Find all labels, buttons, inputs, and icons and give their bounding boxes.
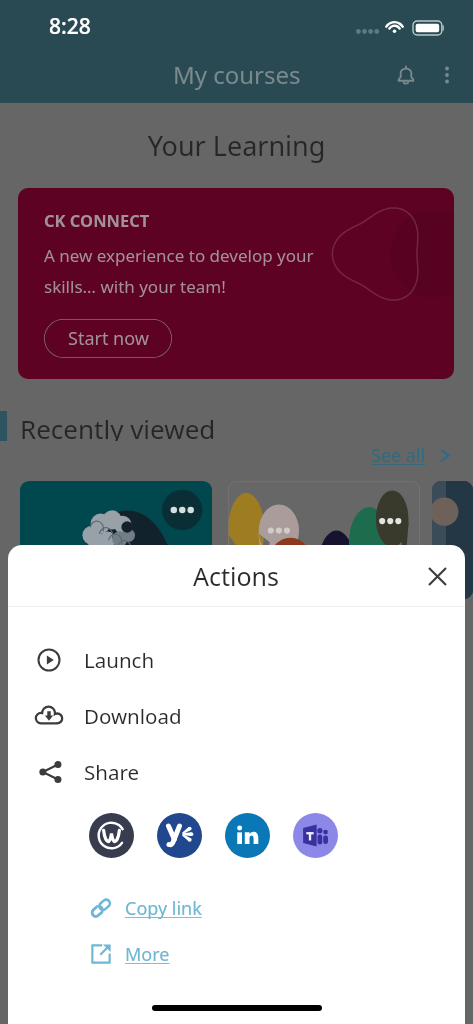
- button[interactable]: [432, 481, 473, 599]
- button[interactable]: [20, 481, 212, 599]
- button[interactable]: Share on LinkedIn: [225, 813, 270, 858]
- button[interactable]: Share on Yammer: [157, 813, 202, 858]
- staticText: Recently viewed: [20, 411, 216, 441]
- staticText: See all: [371, 443, 426, 468]
- button[interactable]: Download: [8, 688, 465, 744]
- button[interactable]: Recently viewed: [0, 411, 216, 441]
- staticText: A new experience to develop your skills……: [44, 244, 314, 298]
- button[interactable]: More options: [429, 57, 465, 93]
- button[interactable]: Copy link: [8, 885, 465, 931]
- button[interactable]: Share: [8, 744, 465, 800]
- button[interactable]: See all: [371, 443, 452, 468]
- staticText: Actions: [193, 559, 280, 593]
- button[interactable]: Start now: [44, 319, 172, 358]
- staticText: 8:28: [49, 12, 91, 41]
- button[interactable]: Launch: [8, 632, 465, 688]
- staticText: My courses: [173, 58, 301, 91]
- staticText: More: [125, 942, 170, 967]
- button[interactable]: More: [8, 931, 465, 977]
- staticText: Launch: [84, 646, 155, 674]
- staticText: Start now: [68, 326, 149, 351]
- staticText: Download: [84, 702, 182, 730]
- staticText: Your Learning: [0, 127, 473, 164]
- button[interactable]: [228, 481, 420, 599]
- button[interactable]: Share on Teams: [293, 813, 338, 858]
- staticText: Copy link: [125, 896, 202, 921]
- button[interactable]: Notifications: [383, 52, 429, 98]
- button[interactable]: CK CONNECT: [18, 188, 454, 379]
- button[interactable]: Share on Workplace: [89, 813, 134, 858]
- staticText: Share: [84, 758, 140, 786]
- button[interactable]: Close: [414, 553, 460, 599]
- staticText: CK CONNECT: [44, 209, 150, 231]
